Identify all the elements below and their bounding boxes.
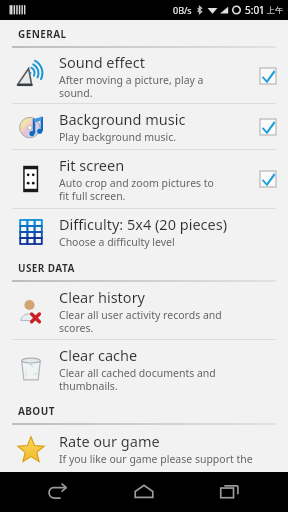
staticText: 0B/s: [173, 4, 192, 16]
staticText: If you like our game please support the: [59, 452, 253, 466]
button[interactable]: Clear cache: [0, 340, 288, 397]
staticText: Clear all user activity records and scor…: [59, 308, 222, 335]
staticText: Choose a difficulty level: [59, 235, 175, 249]
staticText: Difficulty: 5x4 (20 pieces): [59, 214, 227, 234]
staticText: Clear history: [59, 287, 146, 307]
staticText: USER DATA: [18, 261, 75, 275]
staticText: Clear all cached documents and thumbnail…: [59, 366, 216, 393]
button[interactable]: Fit screen: [0, 150, 288, 208]
staticText: After moving a picture, play a sound.: [59, 73, 204, 100]
button[interactable]: Sound effect: [0, 48, 288, 103]
button[interactable]: Toggle setting: [258, 169, 278, 189]
button[interactable]: Home: [116, 472, 172, 512]
button[interactable]: Toggle setting: [258, 117, 278, 137]
staticText: Sound effect: [59, 52, 145, 72]
button[interactable]: Background music: [0, 104, 288, 149]
staticText: Play background music.: [59, 130, 177, 144]
button[interactable]: Back: [30, 472, 86, 512]
button[interactable]: Recent apps: [202, 472, 258, 512]
staticText: Auto crop and zoom pictures to fit full …: [59, 176, 214, 203]
staticText: Background music: [59, 109, 186, 129]
button[interactable]: Toggle setting: [258, 66, 278, 86]
staticText: Fit screen: [59, 155, 125, 175]
staticText: 5:01: [245, 3, 265, 17]
staticText: ABOUT: [18, 404, 55, 418]
staticText: Clear cache: [59, 345, 138, 365]
button[interactable]: Clear history: [0, 282, 288, 339]
staticText: GENERAL: [18, 27, 67, 41]
staticText: Rate our game: [59, 431, 160, 451]
staticText: 上午: [267, 5, 283, 15]
button[interactable]: Difficulty: 5x4 (20 pieces): [0, 209, 288, 254]
button[interactable]: Rate our game: [0, 425, 288, 472]
